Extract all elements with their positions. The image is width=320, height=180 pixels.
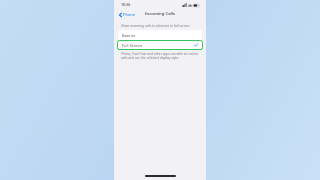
button[interactable]: Phone xyxy=(114,11,138,18)
button[interactable]: Banner xyxy=(118,30,202,40)
staticText: Show incoming calls in a banner or full … xyxy=(121,24,191,28)
staticText: Phone xyxy=(123,12,136,17)
button[interactable]: Full Screen xyxy=(118,40,202,50)
staticText: Phone, FaceTime and other apps are able … xyxy=(121,52,199,60)
staticText: Banner xyxy=(122,33,136,38)
staticText: Incoming Calls xyxy=(145,11,176,17)
staticText: 10:36 xyxy=(121,2,131,7)
staticText: Full Screen xyxy=(122,43,143,48)
